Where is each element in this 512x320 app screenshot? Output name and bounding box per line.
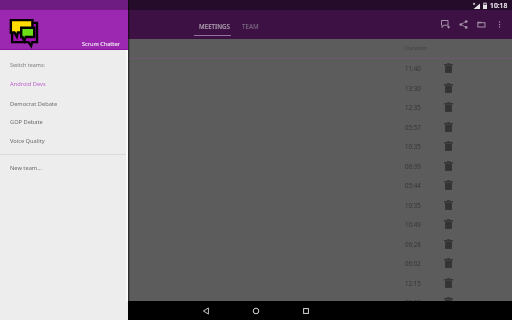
staticText: 06:39 xyxy=(405,162,421,170)
button[interactable]: Voice Quality xyxy=(0,131,128,150)
button[interactable]: More options xyxy=(490,15,508,33)
staticText: Switch teams: xyxy=(10,61,45,68)
staticText: 08:23 xyxy=(405,298,421,306)
staticText: Democrat Debate xyxy=(10,100,58,108)
button[interactable]: 05:57 xyxy=(0,117,512,137)
staticText: 10:35 xyxy=(405,142,421,150)
button[interactable]: Recents xyxy=(298,303,314,319)
button[interactable]: 10:49 xyxy=(0,214,512,234)
button[interactable]: 11:40 xyxy=(0,58,512,78)
staticText: 10:18 xyxy=(490,1,508,10)
staticText: MEETINGS xyxy=(199,22,230,30)
staticText: 06:28 xyxy=(405,240,421,248)
button[interactable]: Folder xyxy=(472,15,490,33)
button[interactable]: 12:15 xyxy=(0,273,512,293)
button[interactable]: New team... xyxy=(0,158,128,177)
staticText: 13:30 xyxy=(405,84,421,92)
staticText: 12:35 xyxy=(405,103,421,111)
staticText: 11:40 xyxy=(405,64,421,72)
staticText: TEAM xyxy=(242,22,259,30)
button[interactable]: 06:28 xyxy=(0,234,512,254)
staticText: 06:02 xyxy=(405,259,421,267)
button[interactable]: 05:44 xyxy=(0,175,512,195)
button[interactable]: 13:30 xyxy=(0,78,512,98)
staticText: New team... xyxy=(10,164,42,172)
staticText: GOP Debate xyxy=(10,118,43,126)
button[interactable]: 06:39 xyxy=(0,156,512,176)
button[interactable]: Share xyxy=(454,15,472,33)
button[interactable]: 10:35 xyxy=(0,136,512,156)
staticText: 05:57 xyxy=(405,123,421,131)
staticText: Scrum Chatter xyxy=(82,40,120,48)
button[interactable]: Android Devs xyxy=(0,74,128,93)
button[interactable]: GOP Debate xyxy=(0,112,128,131)
button[interactable]: 10:35 xyxy=(0,195,512,215)
staticText: Duration xyxy=(405,44,428,51)
staticText: 12:15 xyxy=(405,279,421,287)
button[interactable]: Back xyxy=(198,303,214,319)
staticText: 05:44 xyxy=(405,181,421,189)
button[interactable]: 12:35 xyxy=(0,97,512,117)
button[interactable]: TEAM xyxy=(240,10,260,39)
button[interactable]: Home xyxy=(248,303,264,319)
staticText: Voice Quality xyxy=(10,137,45,145)
button[interactable]: Add comment xyxy=(436,15,454,33)
button[interactable]: MEETINGS xyxy=(194,10,231,39)
button[interactable]: Democrat Debate xyxy=(0,94,128,113)
staticText: 10:35 xyxy=(405,201,421,209)
staticText: Android Devs xyxy=(10,80,46,88)
button[interactable]: 06:02 xyxy=(0,253,512,273)
staticText: 10:49 xyxy=(405,220,421,228)
button[interactable]: 08:23 xyxy=(0,292,512,312)
